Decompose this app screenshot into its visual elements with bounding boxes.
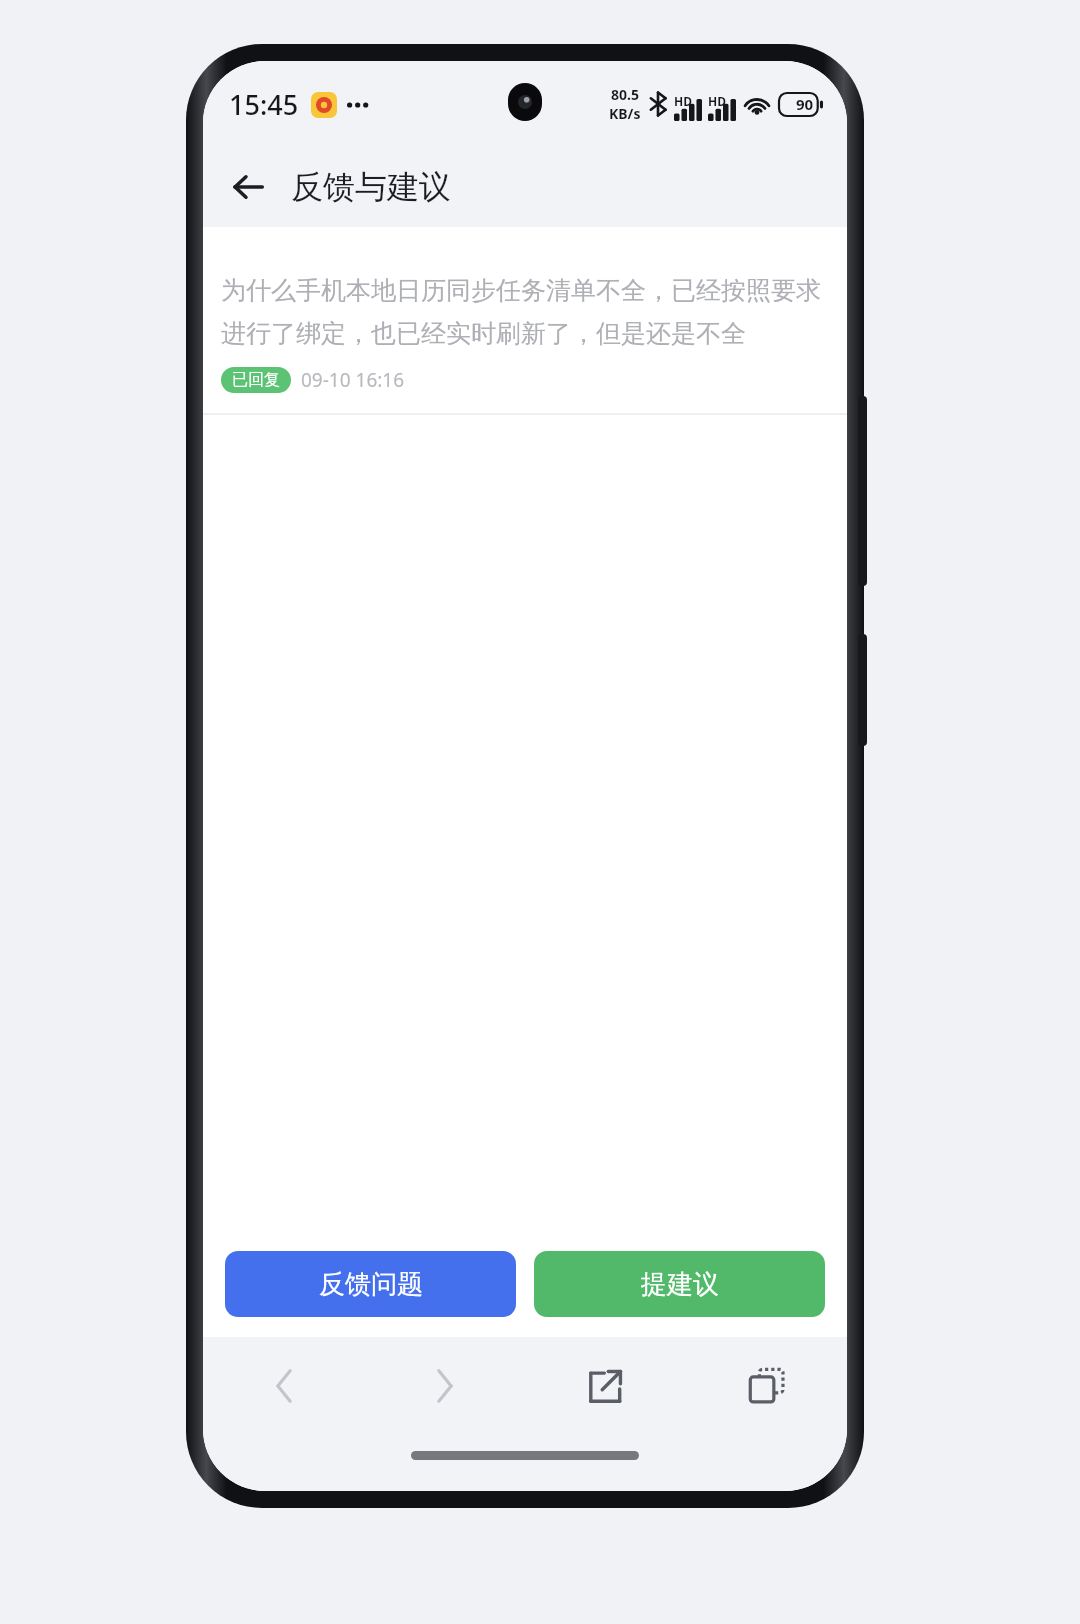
staticText: 进行了绑定，也已经实时刷新了，但是还是不全 <box>221 318 746 349</box>
staticText: 提建议 <box>641 1268 719 1301</box>
button[interactable]: 提建议 <box>534 1251 825 1317</box>
staticText: 80.5 <box>611 85 639 104</box>
button[interactable]: Tabs <box>686 1337 847 1435</box>
button[interactable]: Forward <box>364 1337 525 1435</box>
staticText: 09-10 16:16 <box>301 367 405 393</box>
button[interactable]: 反馈问题 <box>225 1251 516 1317</box>
staticText: 为什么手机本地日历同步任务清单不全，已经按照要求 <box>221 275 821 306</box>
staticText: 15:45 <box>229 86 299 123</box>
button[interactable]: Back <box>219 158 277 216</box>
staticText: 90 <box>796 94 814 114</box>
button[interactable]: Open externally <box>525 1337 686 1435</box>
staticText: HD <box>674 93 692 109</box>
staticText: KB/s <box>609 104 641 123</box>
staticText: 反馈与建议 <box>291 167 451 207</box>
staticText: 已回复 <box>232 370 280 390</box>
staticText: HD <box>708 93 726 109</box>
staticText: 反馈问题 <box>319 1268 423 1301</box>
button[interactable]: Back <box>203 1337 364 1435</box>
